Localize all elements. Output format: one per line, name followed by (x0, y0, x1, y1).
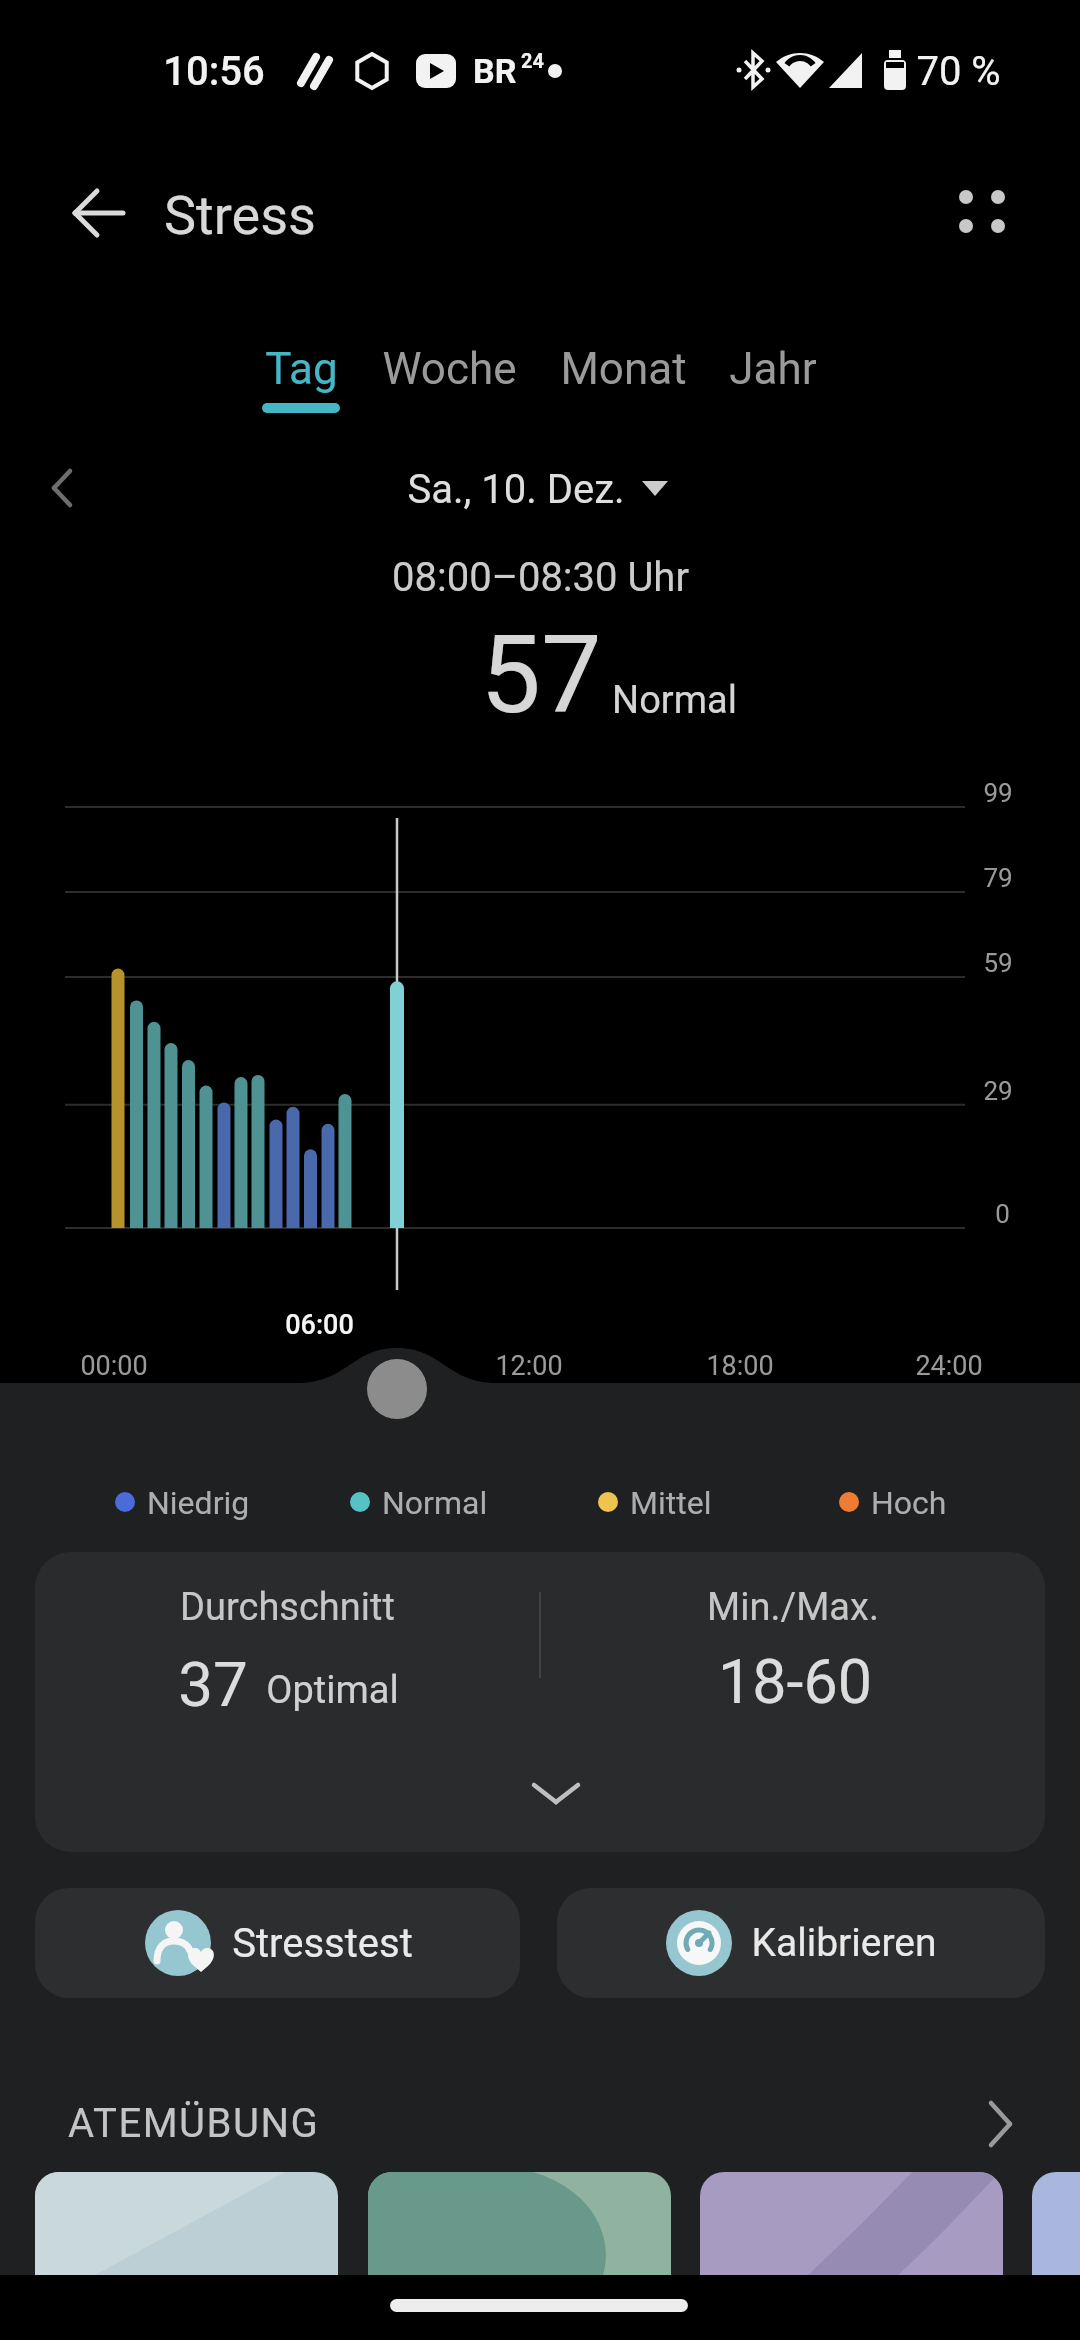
staticText: 37 (178, 1648, 248, 1721)
staticText: 06:00 (285, 1309, 354, 1341)
staticText: 10:56 (163, 48, 265, 95)
staticText: Jahr (729, 343, 817, 395)
staticText: Min./Max. (707, 1585, 879, 1630)
staticText: 18:00 (706, 1350, 774, 1382)
staticText: Normal (612, 678, 737, 723)
staticText: 57 (480, 612, 602, 739)
staticText: Monat (560, 343, 687, 395)
button[interactable] (940, 170, 1025, 255)
staticText: Woche (382, 343, 517, 395)
staticText: Niedrig (147, 1484, 250, 1522)
button[interactable] (250, 330, 352, 420)
button[interactable] (35, 2172, 338, 2275)
staticText: 24 (521, 49, 544, 72)
staticText: 08:00–08:30 Uhr (392, 554, 689, 601)
staticText: Stress (164, 184, 316, 247)
staticText: 00:00 (80, 1350, 148, 1382)
staticText: Hoch (871, 1484, 947, 1522)
button[interactable] (383, 330, 517, 410)
staticText: 70 % (916, 48, 1001, 95)
staticText: 99 (983, 778, 1013, 808)
button[interactable] (30, 455, 96, 521)
staticText: 24:00 (915, 1350, 983, 1382)
staticText: Sa., 10. Dez. (407, 466, 625, 513)
staticText: 79 (983, 863, 1013, 893)
staticText: 18-60 (718, 1646, 872, 1717)
staticText: 59 (983, 948, 1013, 978)
staticText: BR (473, 51, 517, 91)
staticText: Normal (382, 1484, 488, 1522)
staticText: 12:00 (495, 1350, 563, 1382)
button[interactable] (35, 2080, 1045, 2166)
staticText: Tag (265, 343, 338, 395)
staticText: ATEMÜBUNG (68, 2100, 320, 2147)
staticText: Kalibrieren (751, 1920, 937, 1966)
button[interactable] (380, 455, 690, 521)
button[interactable] (700, 2172, 1003, 2275)
button[interactable] (35, 1888, 520, 1998)
button[interactable] (35, 1552, 1045, 1852)
button[interactable] (55, 173, 135, 253)
staticText: Mittel (630, 1484, 712, 1522)
button[interactable] (560, 330, 686, 410)
button[interactable] (730, 330, 818, 410)
staticText: Durchschnitt (180, 1585, 395, 1630)
button[interactable] (557, 1888, 1045, 1998)
staticText: 0 (995, 1199, 1010, 1229)
button[interactable] (368, 2172, 671, 2275)
button[interactable] (1032, 2172, 1080, 2275)
staticText: Stresstest (232, 1920, 413, 1967)
staticText: 29 (983, 1076, 1013, 1106)
staticText: Optimal (266, 1668, 399, 1713)
